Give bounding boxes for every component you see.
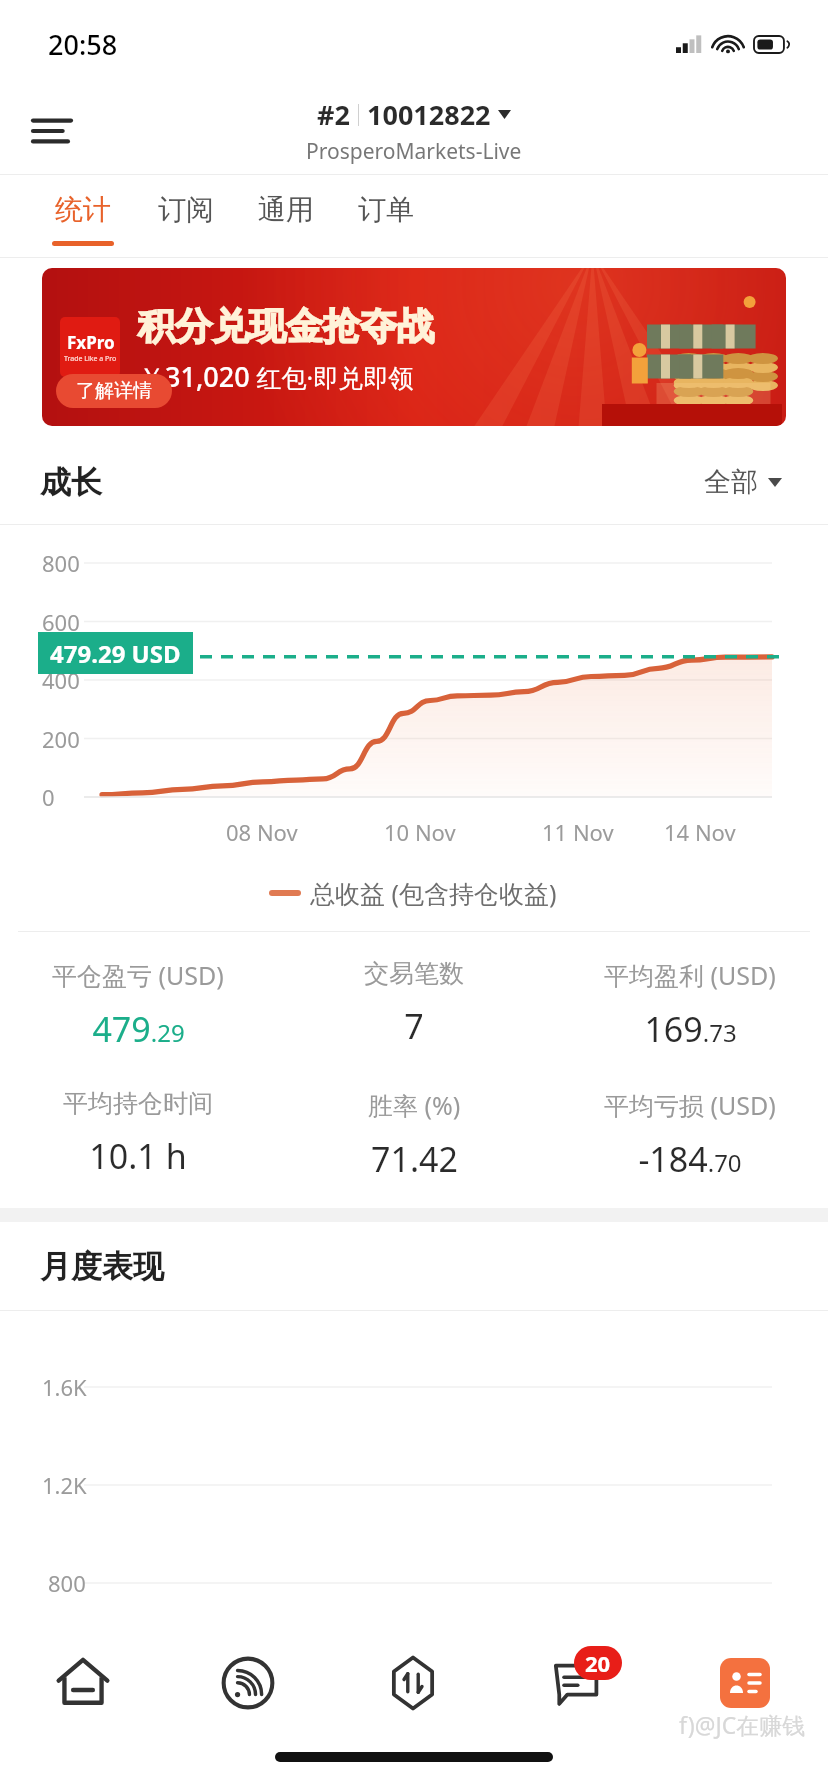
button[interactable]: 订阅 <box>136 174 236 258</box>
staticText: 479.29 USD <box>50 637 181 670</box>
staticText: 800 <box>48 1568 86 1598</box>
button[interactable]: Menu <box>24 103 80 159</box>
staticText: 全部 <box>704 465 758 499</box>
staticText: 14 Nov <box>664 817 736 847</box>
button[interactable]: Messages <box>496 1620 662 1746</box>
staticText: 平均亏损 (USD) <box>604 1088 776 1122</box>
staticText: 10 Nov <box>384 817 456 847</box>
staticText: 479.29 <box>92 1006 185 1052</box>
staticText: #2 <box>317 96 350 133</box>
button[interactable]: 平均持仓时间 <box>0 1088 276 1179</box>
staticText: 月度表现 <box>40 1247 164 1286</box>
staticText: 11 Nov <box>542 817 614 847</box>
button[interactable]: 订单 <box>336 174 436 258</box>
staticText: 成长 <box>40 463 102 502</box>
staticText: 10.1 h <box>89 1133 187 1179</box>
staticText: 平均持仓时间 <box>63 1088 213 1119</box>
button[interactable]: Home <box>0 1620 165 1746</box>
button[interactable]: FxPro <box>42 268 786 426</box>
button[interactable]: 全部 <box>698 459 788 505</box>
staticText: 800 <box>42 548 80 578</box>
staticText: f)@JC在赚钱 <box>679 1709 806 1740</box>
staticText: FxPro <box>67 331 115 354</box>
button[interactable]: Account <box>662 1620 828 1746</box>
button[interactable]: 交易笔数 <box>276 958 552 1049</box>
staticText: 了解详情 <box>76 379 152 403</box>
staticText: 0 <box>42 782 55 812</box>
staticText: 600 <box>42 607 80 637</box>
staticText: 积分兑现金抢夺战 <box>138 303 434 350</box>
staticText: Trade Like a Pro <box>64 354 117 364</box>
staticText: 20:58 <box>48 26 118 63</box>
staticText: 08 Nov <box>226 817 298 847</box>
staticText: 10012822 <box>367 96 491 133</box>
staticText: 胜率 (%) <box>368 1088 461 1122</box>
staticText: 总收益 (包含持仓收益) <box>310 876 557 910</box>
staticText: 交易笔数 <box>364 958 464 989</box>
button[interactable]: 了解详情 <box>56 374 172 408</box>
button[interactable]: 通用 <box>236 174 336 258</box>
staticText: 200 <box>42 724 80 754</box>
staticText: 平仓盈亏 (USD) <box>52 958 224 992</box>
staticText: ￥31,020 红包·即兑即领 <box>138 358 414 395</box>
staticText: 400 <box>42 665 80 695</box>
staticText: 20 <box>585 1648 611 1678</box>
button[interactable]: Trade <box>330 1620 496 1746</box>
staticText: 统计 <box>55 192 111 227</box>
button[interactable]: 平均亏损 (USD) <box>552 1088 828 1182</box>
button[interactable]: 平均盈利 (USD) <box>552 958 828 1052</box>
staticText: 7 <box>404 1003 424 1049</box>
button[interactable]: 平仓盈亏 (USD) <box>0 958 276 1052</box>
staticText: -184.70 <box>638 1136 742 1182</box>
staticText: 通用 <box>258 192 314 227</box>
staticText: 1.6K <box>42 1372 87 1402</box>
staticText: ProsperoMarkets-Live <box>306 137 522 166</box>
button[interactable]: 胜率 (%) <box>276 1088 552 1182</box>
staticText: 订单 <box>358 192 414 227</box>
staticText: 71.42 <box>371 1136 458 1182</box>
button[interactable]: 统计 <box>30 174 136 258</box>
staticText: 平均盈利 (USD) <box>604 958 776 992</box>
staticText: 169.73 <box>644 1006 737 1052</box>
staticText: 1.2K <box>42 1470 87 1500</box>
staticText: 订阅 <box>158 192 214 227</box>
button[interactable]: Signals <box>165 1620 330 1746</box>
